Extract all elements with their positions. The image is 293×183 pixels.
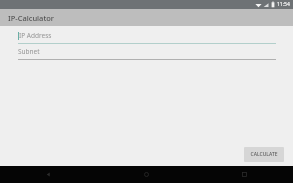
staticText: IP Address (19, 31, 52, 40)
button[interactable]: IP Address (18, 31, 276, 44)
staticText: CALCULATE (250, 151, 278, 158)
staticText: IP-Calculator (8, 13, 55, 23)
staticText: Subnet (18, 47, 40, 56)
staticText: 11:54 (277, 1, 290, 8)
button[interactable]: Subnet (18, 47, 276, 60)
button[interactable]: CALCULATE (244, 147, 284, 162)
